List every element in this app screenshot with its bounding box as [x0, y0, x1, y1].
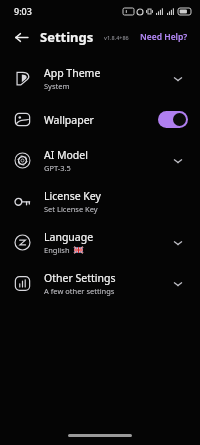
button[interactable]: Expand — [168, 151, 188, 171]
button[interactable]: Wallpaper — [0, 99, 200, 140]
staticText: Set License Key — [44, 204, 98, 214]
staticText: 9:03 — [14, 5, 32, 17]
staticText: App Theme — [44, 66, 101, 80]
staticText: v1.8.4+86 — [104, 34, 129, 41]
button[interactable]: Wallpaper toggle — [158, 111, 188, 128]
button[interactable]: Need Help? — [138, 28, 190, 46]
staticText: Other Settings — [44, 271, 116, 285]
button[interactable]: Other Settings — [0, 263, 200, 304]
button[interactable]: Language — [0, 222, 200, 263]
button[interactable]: Expand — [168, 233, 188, 253]
staticText: License Key — [44, 189, 101, 203]
button[interactable]: Expand — [168, 69, 188, 89]
button[interactable]: AI Model — [0, 140, 200, 181]
staticText: System — [44, 81, 70, 91]
staticText: Language — [44, 230, 94, 244]
button[interactable]: Back — [10, 26, 32, 48]
button[interactable]: Expand — [168, 274, 188, 294]
staticText: A few other settings — [44, 286, 115, 296]
staticText: Settings — [40, 28, 94, 46]
staticText: English — [44, 245, 70, 255]
staticText: AI Model — [44, 148, 88, 162]
staticText: GPT-3.5 — [44, 163, 71, 173]
button[interactable]: App Theme — [0, 58, 200, 99]
staticText: Need Help? — [140, 31, 188, 43]
button[interactable]: License Key — [0, 181, 200, 222]
staticText: Wallpaper — [44, 113, 94, 127]
